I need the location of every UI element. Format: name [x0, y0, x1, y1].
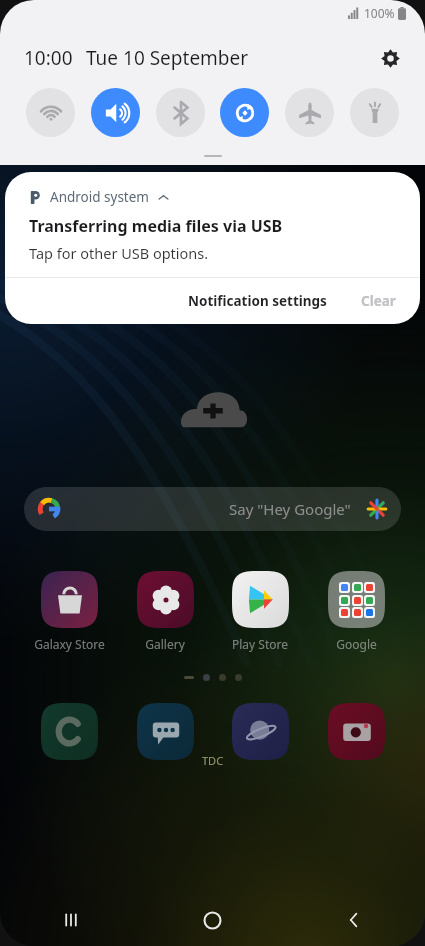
staticText: Clear — [361, 292, 396, 310]
button[interactable]: Wi-Fi — [26, 88, 75, 137]
button[interactable]: Play Store — [219, 571, 301, 652]
button[interactable]: Back — [283, 894, 425, 946]
button[interactable] — [219, 703, 301, 760]
button[interactable]: Bluetooth — [156, 88, 205, 137]
button[interactable]: Flashlight — [350, 88, 399, 137]
button[interactable]: Clear — [351, 283, 406, 319]
button[interactable]: Gallery — [124, 571, 206, 652]
button[interactable]: Android system — [5, 172, 420, 277]
button[interactable]: Home — [141, 894, 283, 946]
button[interactable] — [124, 703, 206, 760]
staticText: Notification settings — [188, 292, 327, 310]
staticText: Gallery — [145, 636, 185, 652]
staticText: 100% — [364, 5, 395, 21]
button[interactable]: Sound — [91, 88, 140, 137]
button[interactable]: Settings — [373, 41, 407, 75]
staticText: Galaxy Store — [34, 636, 105, 652]
button[interactable] — [315, 703, 397, 760]
button[interactable]: Notification settings — [178, 283, 337, 319]
staticText: Tap for other USB options. — [29, 243, 209, 263]
staticText: Play Store — [232, 636, 288, 652]
button[interactable]: Auto rotate — [220, 88, 269, 137]
button[interactable]: Recents — [0, 894, 141, 946]
staticText: TDC — [202, 753, 224, 768]
staticText: 10:00 — [24, 45, 73, 71]
button[interactable]: Say "Hey Google" — [24, 487, 401, 531]
button[interactable]: Galaxy Store — [28, 571, 110, 652]
staticText: Android system — [50, 188, 149, 206]
staticText: Say "Hey Google" — [229, 499, 351, 519]
staticText: Transferring media files via USB — [29, 215, 283, 237]
staticText: Tue 10 September — [86, 45, 249, 71]
button[interactable] — [28, 703, 110, 760]
button[interactable]: Flight mode — [285, 88, 334, 137]
button[interactable]: Google — [315, 571, 397, 652]
staticText: Google — [336, 636, 377, 652]
